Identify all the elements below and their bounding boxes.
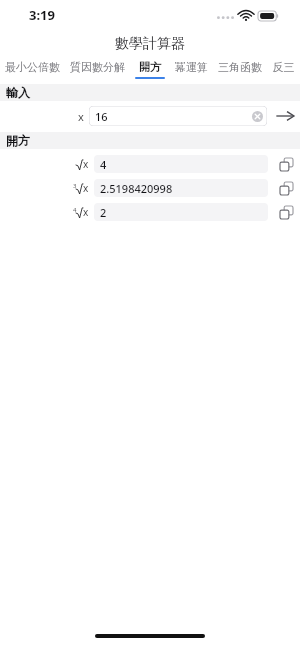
staticText: x [78, 109, 84, 124]
staticText: 2 [100, 205, 107, 220]
staticText: 數學計算器 [115, 35, 185, 53]
staticText: 最小公倍數 [5, 60, 60, 74]
button[interactable]: 4 [94, 155, 268, 173]
button[interactable]: 2.5198420998 [94, 179, 268, 197]
staticText: 冪運算 [175, 60, 208, 74]
button[interactable]: 最小公倍數 [5, 58, 60, 84]
staticText: 輸入 [6, 85, 30, 100]
staticText: x [83, 181, 89, 195]
staticText: 4 [73, 206, 77, 214]
staticText: 4 [100, 157, 107, 172]
button[interactable]: 開方 [135, 58, 165, 84]
staticText: x [83, 205, 89, 219]
button[interactable]: Clear [252, 111, 263, 122]
button[interactable]: 反三角 [272, 58, 295, 84]
button[interactable]: 2 [94, 203, 268, 221]
staticText: 反三角 [272, 60, 295, 74]
staticText: 開方 [139, 60, 161, 74]
button[interactable]: 三角函數 [218, 58, 262, 84]
button[interactable]: Copy [276, 178, 296, 198]
staticText: 開方 [6, 133, 30, 148]
button[interactable]: 質因數分解 [70, 58, 125, 84]
staticText: 三角函數 [218, 60, 262, 74]
staticText: 質因數分解 [70, 60, 125, 74]
staticText: 16 [95, 109, 108, 124]
staticText: 3 [73, 182, 77, 190]
button[interactable]: 16 [89, 106, 267, 126]
staticText: 3:19 [29, 6, 55, 24]
button[interactable]: Copy [276, 154, 296, 174]
button[interactable]: Submit [274, 106, 296, 126]
staticText: 2.5198420998 [100, 181, 173, 196]
button[interactable]: 冪運算 [175, 58, 208, 84]
staticText: x [83, 157, 89, 171]
button[interactable]: Copy [276, 202, 296, 222]
